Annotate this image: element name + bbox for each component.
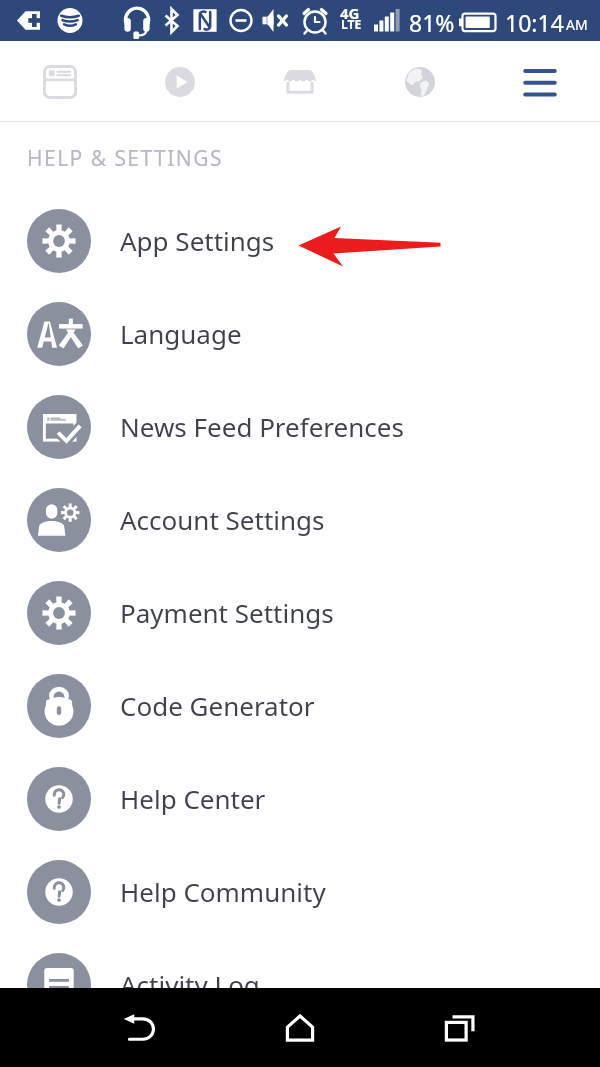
staticText: News Feed Preferences	[120, 409, 404, 444]
staticText: Activity Log	[120, 967, 260, 1002]
button[interactable]: Help Center	[0, 752, 600, 845]
button[interactable]: Marketplace	[240, 41, 360, 122]
button[interactable]: Payment Settings	[0, 566, 600, 659]
staticText: LTE	[341, 16, 362, 32]
staticText: HELP & SETTINGS	[27, 144, 223, 173]
button[interactable]: Code Generator	[0, 659, 600, 752]
staticText: Help Community	[120, 874, 326, 909]
button[interactable]: Recents	[380, 988, 540, 1067]
staticText: 10:14	[505, 7, 564, 38]
staticText: Language	[120, 316, 242, 351]
button[interactable]: Activity Log	[0, 938, 600, 1031]
staticText: Help Center	[120, 781, 266, 816]
button[interactable]: Language	[0, 287, 600, 380]
button[interactable]: Help Community	[0, 845, 600, 938]
staticText: AM	[566, 15, 588, 34]
staticText: Payment Settings	[120, 595, 334, 630]
button[interactable]: Notifications	[360, 41, 480, 122]
staticText: 4G	[340, 3, 360, 23]
button[interactable]: Menu	[480, 41, 600, 122]
staticText: 81%	[409, 7, 455, 38]
button[interactable]: News Feed	[0, 41, 120, 122]
button[interactable]: Video	[120, 41, 240, 122]
staticText: Code Generator	[120, 688, 315, 723]
staticText: App Settings	[120, 223, 275, 258]
button[interactable]: App Settings	[0, 194, 600, 287]
staticText: Account Settings	[120, 502, 325, 537]
button[interactable]: Account Settings	[0, 473, 600, 566]
button[interactable]: News Feed Preferences	[0, 380, 600, 473]
button[interactable]: Back	[60, 988, 220, 1067]
button[interactable]: Home	[220, 988, 380, 1067]
